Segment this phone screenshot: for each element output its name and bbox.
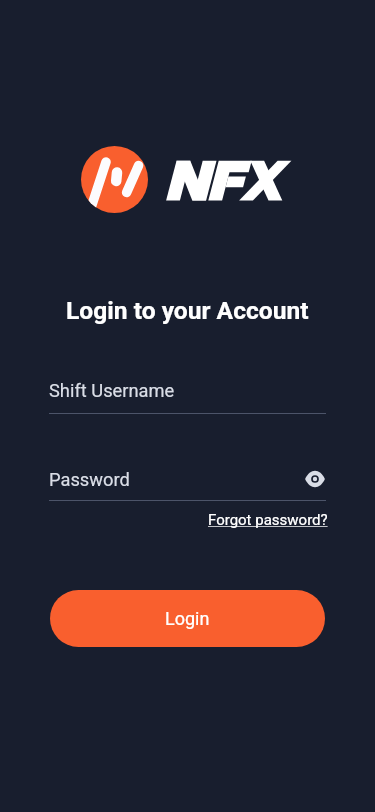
staticText: Login to your Account xyxy=(66,296,309,325)
staticText: Shift Username xyxy=(49,380,175,401)
staticText: Forgot password? xyxy=(208,511,328,529)
button[interactable]: Password xyxy=(49,468,326,490)
button[interactable]: Show password xyxy=(304,468,326,490)
button[interactable]: Forgot password? xyxy=(208,511,328,529)
staticText: Login xyxy=(165,608,210,629)
button[interactable]: Login xyxy=(50,590,325,647)
button[interactable]: Shift Username xyxy=(49,380,326,414)
staticText: Password xyxy=(49,469,130,490)
